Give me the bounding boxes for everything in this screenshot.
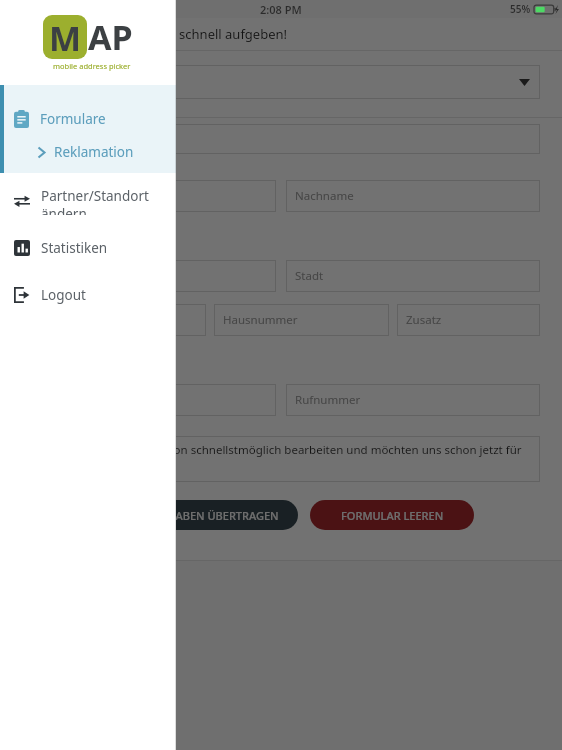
button[interactable]: Logout — [0, 281, 176, 309]
staticText: Bitte nicht so schnell aufgeben! — [96, 25, 288, 43]
button[interactable]: FORMULAR LEEREN — [310, 500, 474, 530]
staticText: Statistiken — [41, 239, 108, 257]
staticText: 55% — [510, 2, 531, 16]
other: Formulare — [14, 110, 29, 128]
button[interactable]: Zusatz — [397, 304, 540, 336]
staticText: mobile address picker — [53, 61, 131, 71]
button[interactable]: Strasse — [22, 304, 206, 336]
staticText: Partner/Standort ändern — [41, 187, 176, 215]
staticText: M — [49, 15, 82, 59]
button[interactable]: Rufnummer — [286, 384, 540, 416]
staticText: 2:08 PM — [260, 2, 302, 17]
staticText: Hausnummer — [223, 312, 298, 328]
other: Partner/Standort ändern — [14, 194, 30, 208]
staticText: FORMULAR LEEREN — [341, 508, 444, 523]
staticText: Wir werden Ihre Reklamation schnellstmög… — [30, 442, 532, 474]
staticText: Zusatz — [406, 312, 442, 328]
button[interactable]: Nachname — [286, 180, 540, 212]
staticText: Nachname — [295, 188, 354, 204]
button[interactable]: Stadt — [286, 260, 540, 292]
button[interactable]: Formulare — [0, 105, 176, 133]
staticText: AP — [88, 14, 133, 60]
staticText: Rufnummer — [295, 392, 361, 408]
staticText: Reklamation — [54, 143, 134, 161]
staticText: Logout — [41, 286, 86, 304]
button[interactable]: Statistiken — [0, 234, 176, 262]
other: Logout — [14, 287, 30, 303]
staticText: Vorname — [31, 188, 81, 204]
staticText: EINGABEN ÜBERTRAGEN — [149, 508, 279, 523]
button[interactable]: EINGABEN ÜBERTRAGEN — [130, 500, 298, 530]
button[interactable]: Hausnummer — [214, 304, 389, 336]
button[interactable]: E-Mail — [22, 384, 276, 416]
button[interactable]: Reklamation — [0, 139, 176, 165]
staticText: Formulare — [40, 110, 106, 128]
staticText: Stadt — [295, 268, 324, 284]
button[interactable]: Vorname — [22, 180, 276, 212]
other: Statistiken — [14, 240, 30, 256]
button[interactable]: Partner/Standort ändern — [0, 187, 176, 215]
button[interactable]: PLZ — [22, 260, 276, 292]
